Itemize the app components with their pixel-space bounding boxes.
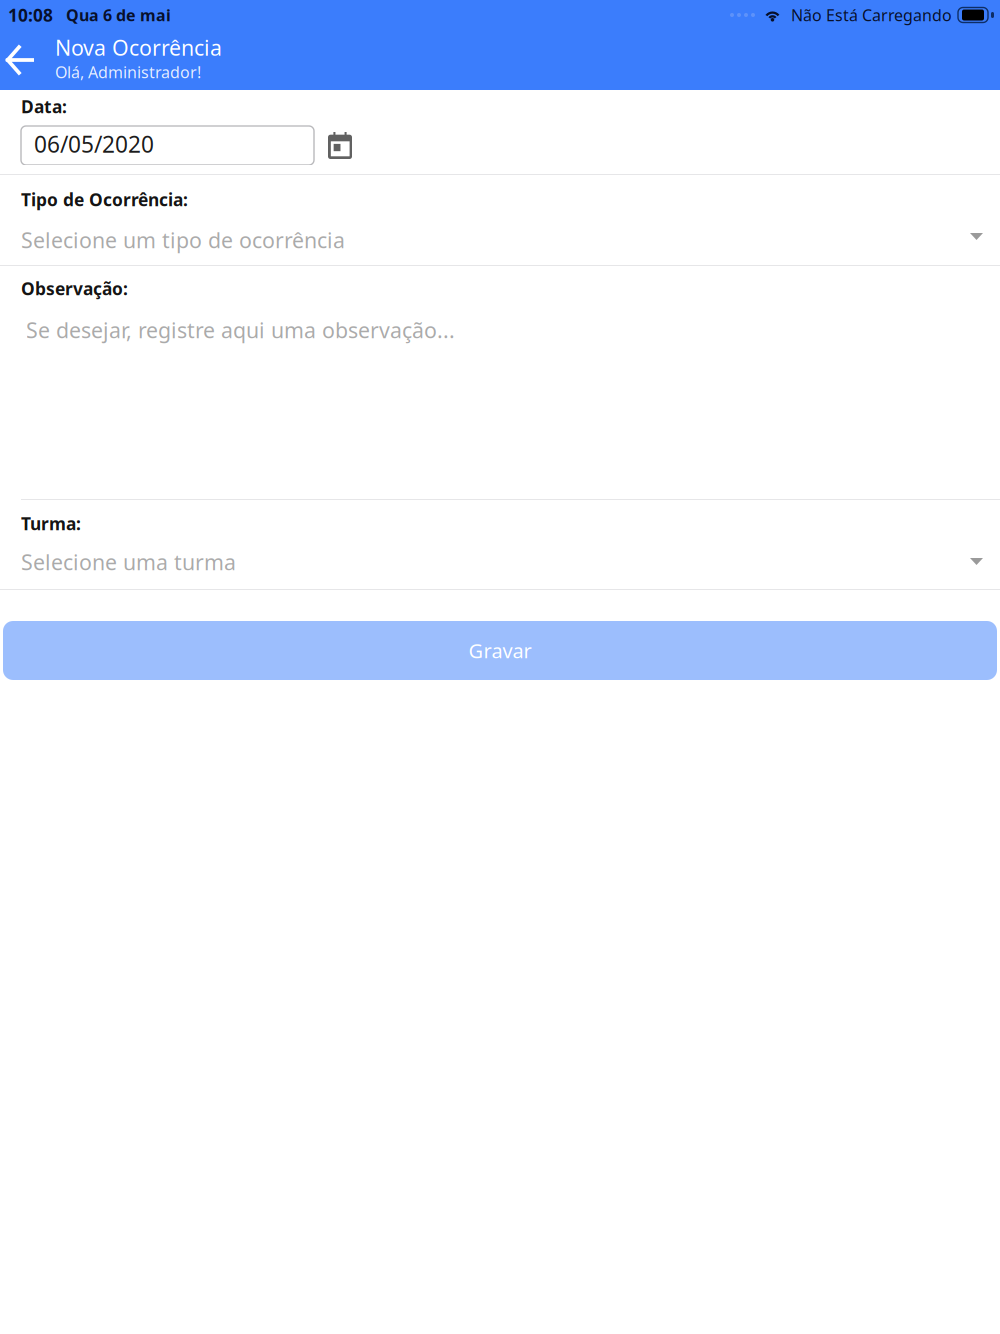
staticText: Não Está Carregando	[791, 4, 952, 26]
staticText: Se desejar, registre aqui uma observação…	[26, 316, 455, 344]
staticText: Observação:	[21, 277, 128, 300]
button[interactable]: Escolher data	[314, 126, 362, 165]
staticText: Turma:	[21, 512, 81, 535]
staticText: Tipo de Ocorrência:	[21, 188, 188, 211]
staticText: 10:08	[8, 3, 53, 26]
button[interactable]: Gravar	[3, 621, 997, 680]
button[interactable]: Selecione uma turma	[0, 535, 1000, 589]
staticText: Selecione um tipo de ocorrência	[21, 226, 345, 254]
button[interactable]: Back	[0, 30, 47, 90]
staticText: Gravar	[468, 637, 531, 664]
staticText: Data:	[21, 95, 67, 118]
staticText: Nova Ocorrência	[55, 33, 222, 62]
staticText: Selecione uma turma	[21, 548, 236, 576]
button[interactable]: Se desejar, registre aqui uma observação…	[0, 300, 1000, 499]
button[interactable]: Selecione um tipo de ocorrência	[0, 211, 1000, 265]
staticText: Olá, Administrador!	[55, 61, 201, 83]
staticText: 06/05/2020	[34, 129, 154, 159]
staticText: Qua 6 de mai	[66, 4, 171, 26]
